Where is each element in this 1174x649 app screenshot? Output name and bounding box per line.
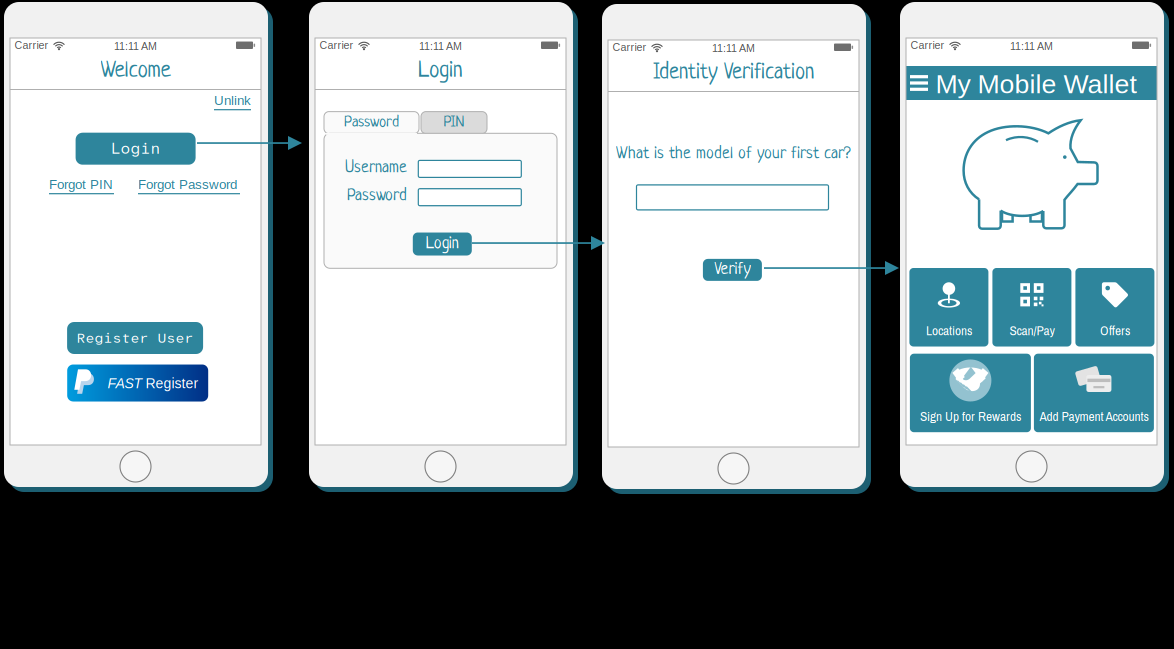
button[interactable]: Offers — [1075, 268, 1154, 346]
button[interactable]: Forgot PIN — [49, 177, 114, 194]
staticText: Add Payment Accounts — [1039, 407, 1148, 425]
staticText: 11:11 AM — [1010, 40, 1053, 52]
button[interactable]: Menu — [906, 72, 932, 94]
staticText: Carrier — [14, 39, 48, 51]
button[interactable]: Text field — [418, 189, 521, 206]
staticText: Sign Up for Rewards — [920, 407, 1021, 425]
staticText: Carrier — [910, 39, 944, 51]
button[interactable]: Add Payment Accounts — [1034, 354, 1154, 432]
staticText: Identity Verification — [653, 61, 814, 85]
staticText: Locations — [926, 321, 972, 339]
staticText: My Mobile Wallet — [935, 69, 1136, 99]
staticText: Forgot Password — [138, 177, 237, 192]
button[interactable]: Locations — [909, 268, 988, 346]
staticText: Register — [145, 375, 198, 391]
button[interactable]: FAST — [67, 364, 208, 401]
staticText: Forgot PIN — [49, 177, 113, 192]
button[interactable]: Forgot Password — [138, 177, 240, 194]
button[interactable]: Text field — [636, 185, 828, 210]
button[interactable]: Verify — [703, 259, 762, 281]
staticText: What is the model of your first car? — [616, 145, 851, 163]
staticText: Scan/Pay — [1009, 321, 1054, 339]
button[interactable]: Scan/Pay — [992, 268, 1071, 346]
button[interactable]: Password — [324, 112, 419, 134]
button[interactable]: Register User — [67, 322, 203, 354]
button[interactable]: Login — [413, 232, 472, 255]
staticText: Login — [111, 139, 161, 159]
button[interactable]: PIN — [421, 112, 487, 134]
staticText: 11:11 AM — [712, 42, 755, 54]
staticText: Welcome — [100, 59, 170, 83]
button[interactable]: Sign Up for Rewards — [910, 354, 1031, 432]
staticText: Offers — [1100, 321, 1130, 339]
staticText: Carrier — [319, 39, 353, 51]
staticText: Login — [426, 235, 459, 253]
staticText: PIN — [443, 114, 464, 131]
staticText: 11:11 AM — [419, 40, 462, 52]
button[interactable]: Text field — [418, 160, 521, 177]
staticText: Unlink — [214, 93, 251, 108]
staticText: Verify — [714, 261, 750, 279]
staticText: Password — [347, 187, 407, 205]
staticText: Username — [345, 159, 407, 177]
staticText: Register User — [77, 329, 194, 347]
button[interactable]: Unlink — [214, 93, 251, 110]
staticText: Password — [344, 114, 399, 131]
staticText: Carrier — [612, 41, 646, 53]
staticText: Login — [418, 59, 463, 83]
button[interactable]: Login — [76, 133, 196, 165]
staticText: 11:11 AM — [114, 40, 157, 52]
staticText: FAST — [107, 375, 142, 391]
